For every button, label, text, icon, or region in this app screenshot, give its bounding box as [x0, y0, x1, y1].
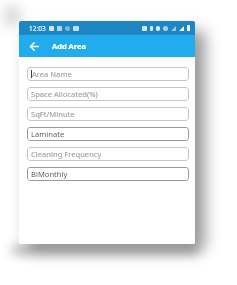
- staticText: 12:03: [29, 24, 46, 33]
- staticText: BiMonthly: [31, 169, 68, 179]
- staticText: Area Name: [32, 69, 72, 79]
- button[interactable]: BiMonthly: [27, 167, 189, 181]
- staticText: SqFt/Minute: [31, 109, 75, 119]
- button[interactable]: Cleaning Frequency: [27, 147, 189, 161]
- button[interactable]: SqFt/Minute: [27, 107, 189, 121]
- staticText: Cleaning Frequency: [31, 149, 102, 159]
- staticText: Add Area: [52, 41, 86, 51]
- button[interactable]: Area Name: [27, 67, 189, 81]
- staticText: Laminate: [31, 129, 65, 139]
- button[interactable]: Space Allocated(%): [27, 87, 189, 101]
- button[interactable]: Laminate: [27, 127, 189, 141]
- button[interactable]: [22, 35, 46, 57]
- staticText: Space Allocated(%): [31, 89, 98, 99]
